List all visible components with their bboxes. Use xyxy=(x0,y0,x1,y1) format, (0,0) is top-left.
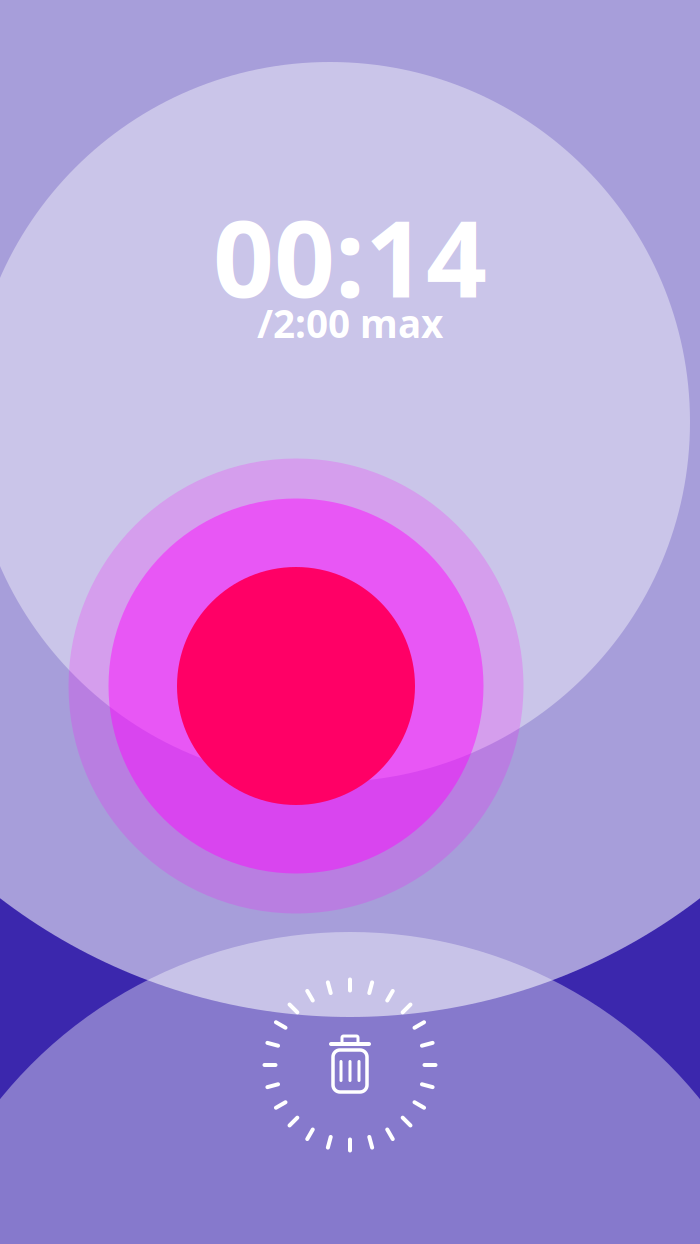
button[interactable]: Stop recording xyxy=(68,458,523,913)
staticText: /2:00 max xyxy=(257,297,443,349)
button[interactable]: Delete recording xyxy=(262,977,437,1152)
staticText: 00:14 xyxy=(213,185,487,327)
